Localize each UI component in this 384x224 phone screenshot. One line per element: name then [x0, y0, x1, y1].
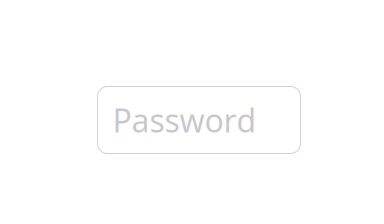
staticText: Password — [112, 99, 256, 141]
button[interactable]: Password — [97, 86, 300, 153]
